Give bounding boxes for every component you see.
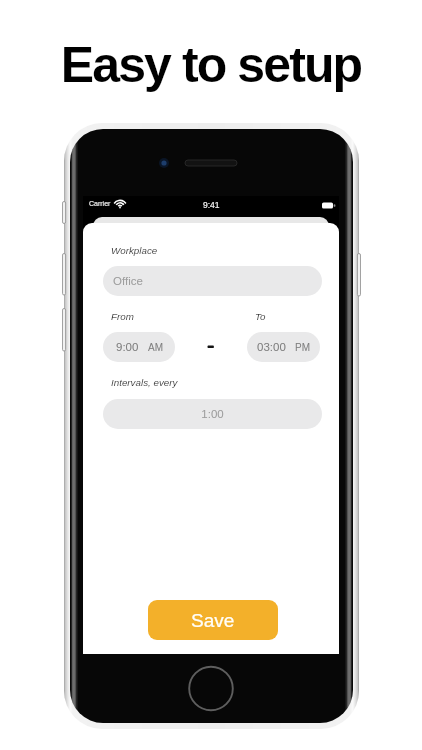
- staticText: Office: [113, 275, 143, 288]
- button[interactable]: 1:00: [103, 399, 322, 429]
- button[interactable]: Save: [148, 600, 278, 640]
- button[interactable]: 03:00: [247, 332, 320, 362]
- staticText: Intervals, every: [111, 377, 178, 388]
- staticText: Save: [191, 610, 235, 631]
- staticText: 03:00: [257, 341, 286, 354]
- staticText: 9:00: [116, 341, 139, 354]
- staticText: AM: [148, 342, 163, 353]
- button[interactable]: 9:00: [103, 332, 175, 362]
- staticText: To: [255, 311, 266, 322]
- staticText: Carrier: [89, 200, 111, 208]
- staticText: 9:41: [203, 200, 220, 209]
- staticText: 1:00: [103, 408, 322, 421]
- button[interactable]: Office: [103, 266, 322, 296]
- staticText: From: [111, 311, 134, 322]
- staticText: Easy to setup: [0, 37, 422, 93]
- staticText: PM: [295, 342, 310, 353]
- staticText: Workplace: [111, 245, 158, 256]
